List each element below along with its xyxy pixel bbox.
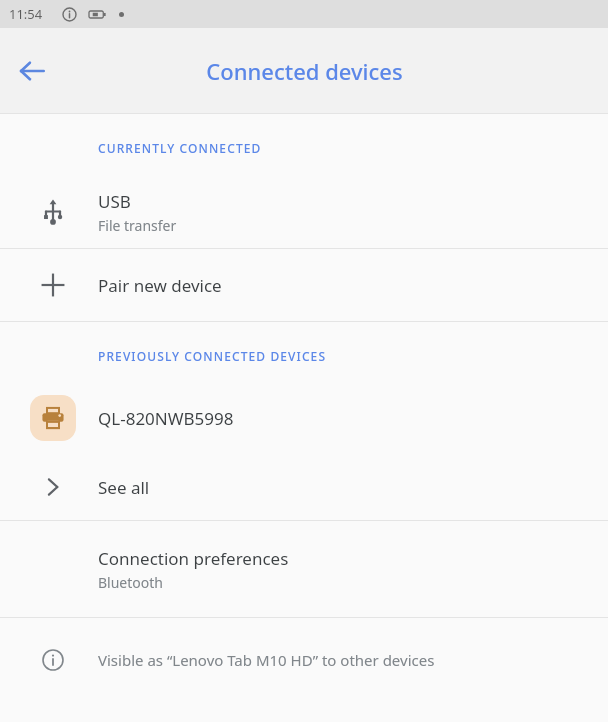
button[interactable]: Pair new device xyxy=(0,249,608,321)
staticText: Bluetooth xyxy=(98,573,163,592)
staticText: File transfer xyxy=(98,216,177,235)
staticText: See all xyxy=(98,476,150,499)
staticText: PREVIOUSLY CONNECTED DEVICES xyxy=(98,348,327,364)
staticText: CURRENTLY CONNECTED xyxy=(98,140,262,156)
button[interactable]: USB xyxy=(0,176,608,248)
button[interactable]: Connection preferences xyxy=(0,521,608,617)
staticText: Connected devices xyxy=(206,56,403,86)
staticText: USB xyxy=(98,190,131,213)
staticText: 11:54 xyxy=(9,5,43,23)
button[interactable]: See all xyxy=(0,454,608,520)
staticText: QL-820NWB5998 xyxy=(98,407,234,430)
button[interactable]: Back xyxy=(8,47,56,95)
staticText: Connection preferences xyxy=(98,547,289,570)
staticText: Pair new device xyxy=(98,274,222,297)
staticText: Visible as “Lenovo Tab M10 HD” to other … xyxy=(98,650,435,670)
button[interactable]: QL-820NWB5998 xyxy=(0,382,608,454)
